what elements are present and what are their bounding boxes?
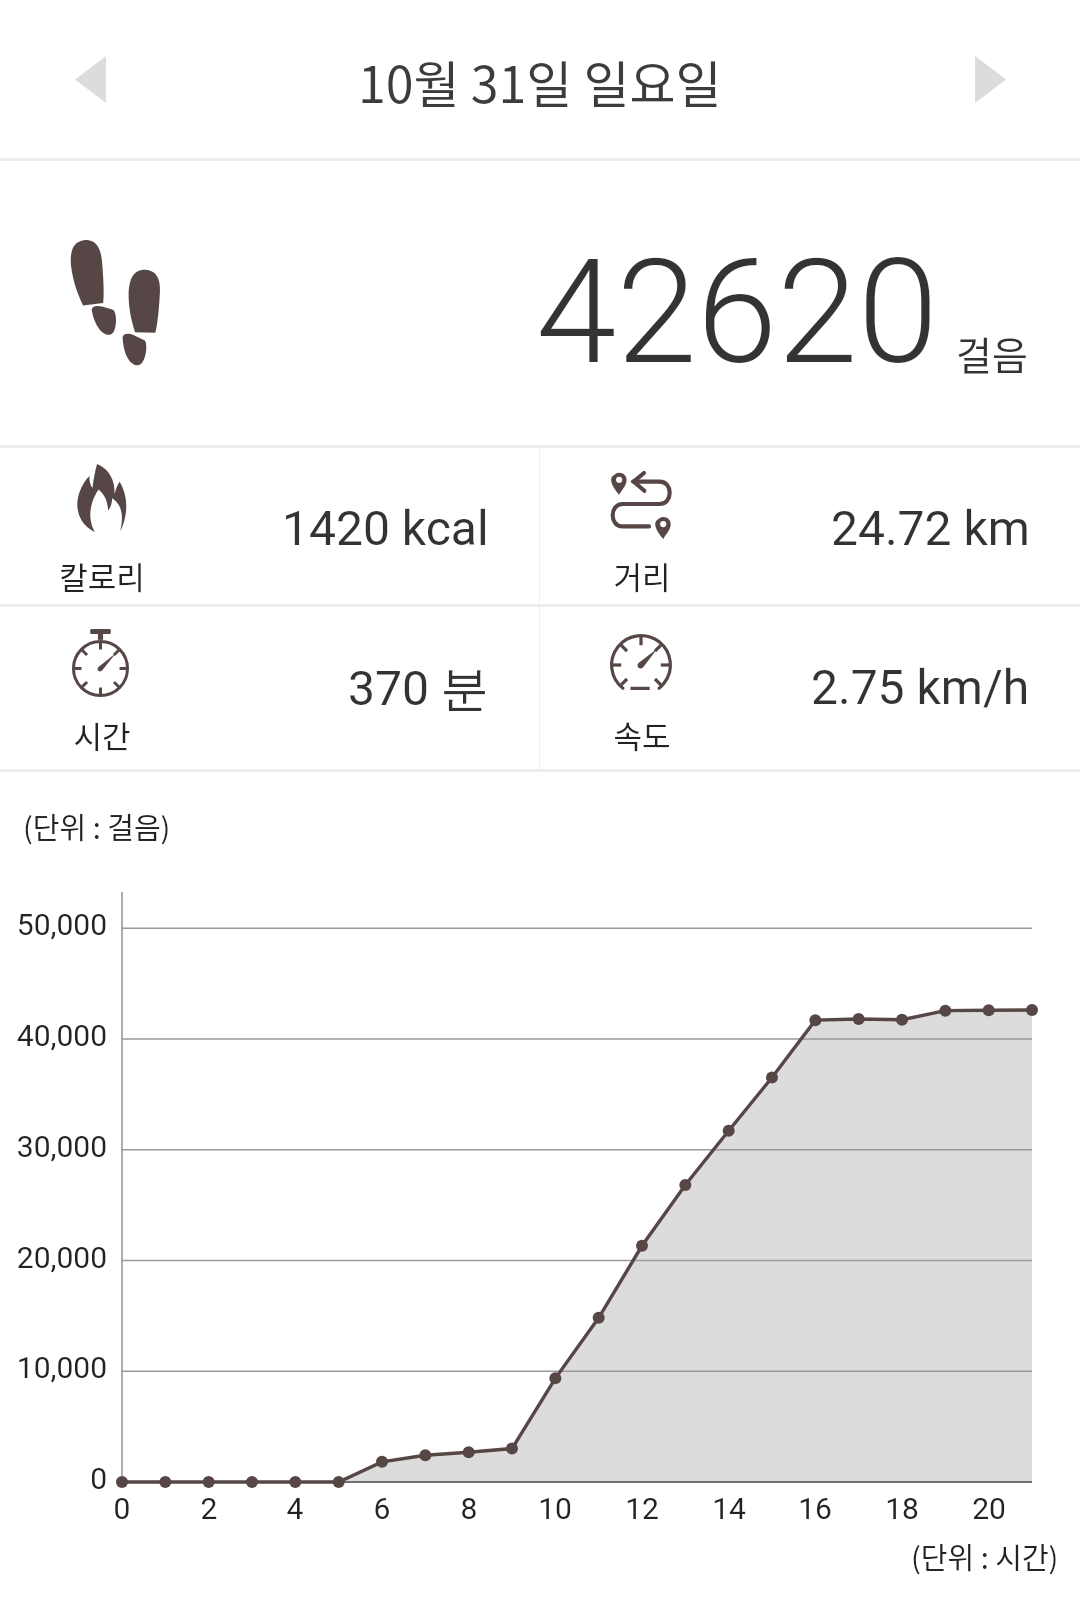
staticText: (단위 : 시간) [911, 1535, 1059, 1577]
staticText: 걸음 [956, 325, 1028, 381]
staticText: 6 [342, 1491, 422, 1526]
staticText: 16 [775, 1491, 855, 1526]
staticText: 10월 31일 일요일 [358, 45, 722, 117]
staticText: 거리 [582, 553, 702, 598]
staticText: 42620 [536, 227, 939, 397]
staticText: 0 [0, 1461, 107, 1496]
button[interactable]: Next day [915, 19, 1065, 140]
staticText: 1420 kcal [282, 500, 489, 556]
staticText: 20,000 [0, 1240, 107, 1275]
button[interactable]: 거리 [540, 448, 1080, 604]
staticText: 24.72 km [831, 500, 1030, 556]
staticText: 40,000 [0, 1018, 107, 1053]
staticText: 칼로리 [42, 553, 162, 598]
button[interactable]: Previous day [15, 19, 165, 140]
staticText: 속도 [582, 712, 702, 757]
staticText: (단위 : 걸음) [23, 805, 171, 847]
staticText: 12 [602, 1491, 682, 1526]
staticText: 14 [689, 1491, 769, 1526]
button[interactable]: 속도 [540, 607, 1080, 769]
staticText: 370 분 [348, 659, 489, 719]
staticText: 2 [169, 1491, 249, 1526]
staticText: 10 [515, 1491, 595, 1526]
staticText: 2.75 km/h [811, 659, 1030, 715]
staticText: 시간 [42, 712, 162, 757]
staticText: 10,000 [0, 1350, 107, 1385]
staticText: 18 [862, 1491, 942, 1526]
staticText: 8 [429, 1491, 509, 1526]
button[interactable]: 시간 [0, 607, 539, 769]
button[interactable]: 칼로리 [0, 448, 539, 604]
staticText: 50,000 [0, 907, 107, 942]
staticText: 30,000 [0, 1129, 107, 1164]
staticText: 0 [82, 1491, 162, 1526]
staticText: 4 [255, 1491, 335, 1526]
staticText: 20 [949, 1491, 1029, 1526]
